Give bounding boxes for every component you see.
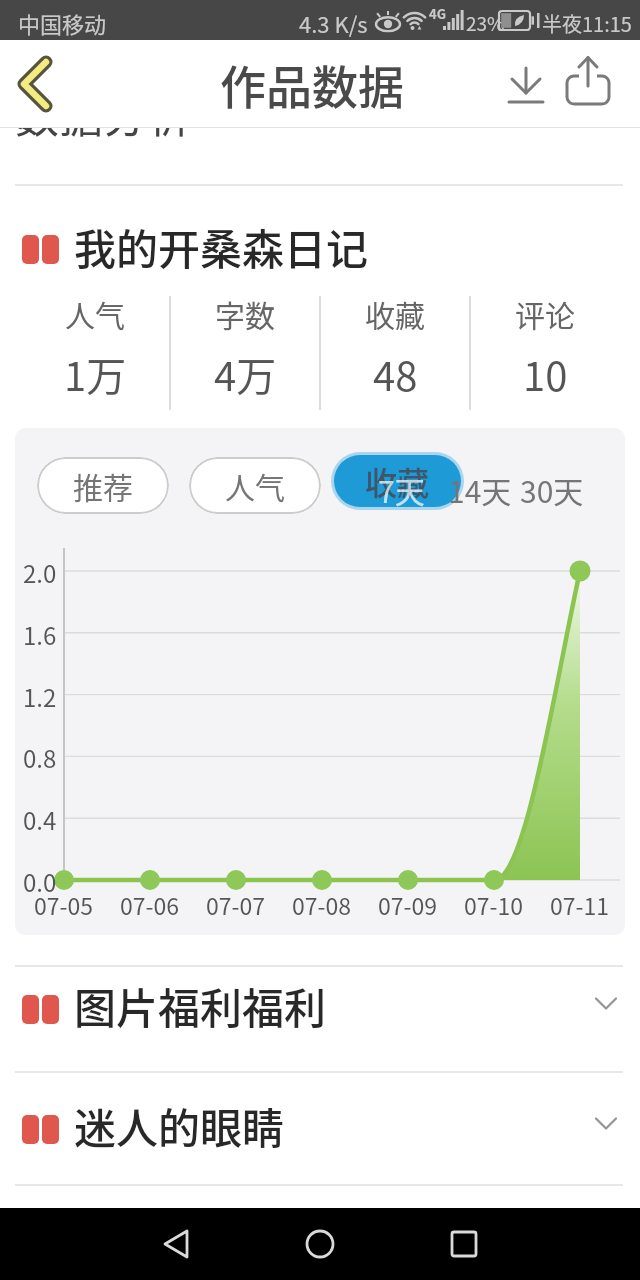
button[interactable]: 图片福利福利 [0, 975, 640, 1071]
staticText: 收藏 [365, 292, 425, 335]
button[interactable]: 评论 [470, 292, 620, 403]
staticText: 图片福利福利 [74, 975, 327, 1036]
staticText: 1.6 [23, 617, 57, 649]
button[interactable]: 迷人的眼睛 [0, 1095, 640, 1191]
button[interactable] [428, 1208, 500, 1280]
staticText: 30天 [520, 468, 584, 511]
button[interactable] [0, 40, 70, 128]
staticText: 07-05 [34, 888, 94, 918]
staticText: 23% [466, 9, 505, 37]
staticText: 07-07 [206, 888, 266, 918]
staticText: 推荐 [73, 464, 133, 507]
staticText: 07-11 [550, 888, 610, 918]
staticText: 数据分析 [15, 82, 191, 146]
button[interactable] [560, 42, 616, 120]
button[interactable]: 推荐 [37, 457, 169, 514]
staticText: 1.2 [23, 679, 57, 711]
staticText: 48 [373, 345, 418, 403]
button[interactable]: 收藏 [320, 292, 470, 403]
staticText: 07-06 [120, 888, 180, 918]
staticText: 07-10 [464, 888, 524, 918]
staticText: 07-08 [292, 888, 352, 918]
staticText: 收藏 [365, 458, 430, 504]
button[interactable]: 人气 [20, 292, 170, 403]
button[interactable] [284, 1208, 356, 1280]
staticText: 7天 [378, 468, 425, 511]
staticText: 07-09 [378, 888, 438, 918]
staticText: 迷人的眼睛 [74, 1095, 285, 1156]
staticText: 0.0 [23, 864, 57, 896]
staticText: 14天 [448, 468, 512, 511]
staticText: 4万 [214, 345, 277, 403]
staticText: 0.4 [23, 802, 57, 834]
staticText: 人气 [225, 464, 285, 507]
button[interactable]: 人气 [189, 457, 321, 514]
button[interactable] [500, 52, 552, 120]
staticText: 作品数据 [220, 51, 404, 118]
staticText: 1万 [64, 345, 127, 403]
staticText: 4.3 K/s [299, 7, 368, 39]
staticText: 0.8 [23, 740, 57, 772]
staticText: 评论 [515, 292, 575, 335]
staticText: 4G [429, 4, 446, 23]
staticText: 我的开桑森日记 [74, 216, 369, 277]
staticText: 字数 [215, 292, 275, 335]
staticText: 中国移动 [18, 7, 107, 39]
staticText: 人气 [65, 292, 125, 335]
staticText: 10 [523, 345, 568, 403]
button[interactable] [140, 1208, 212, 1280]
button[interactable]: 我的开桑森日记 [0, 212, 640, 284]
staticText: 2.0 [23, 555, 57, 587]
button[interactable]: 收藏 [334, 455, 461, 507]
staticText: 半夜11:15 [542, 9, 632, 38]
button[interactable]: 字数 [170, 292, 320, 403]
